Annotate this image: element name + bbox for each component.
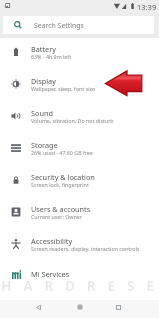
button[interactable]: Sound	[0, 100, 159, 132]
button[interactable]: Security & location	[0, 164, 159, 196]
button[interactable]: Accessibility	[0, 228, 159, 260]
staticText: Screen readers, display, interaction con…	[31, 245, 140, 252]
button[interactable]: Mi Services	[0, 258, 159, 290]
staticText: 26% used - 47.60 GB free	[31, 149, 93, 156]
staticText: Accessibility	[31, 236, 73, 246]
staticText: Search Settings	[34, 21, 84, 30]
staticText: Screen lock, fingerprint	[31, 181, 89, 188]
staticText: HARDRESET	[1, 276, 159, 295]
button[interactable]: Storage	[0, 132, 159, 164]
button[interactable]: Recents	[109, 298, 128, 317]
staticText: 13:39	[137, 2, 157, 12]
button[interactable]: Home	[70, 297, 89, 316]
button[interactable]: Back	[29, 298, 48, 317]
button[interactable]: Battery	[0, 36, 159, 68]
button[interactable]: Users & accounts	[0, 196, 159, 228]
staticText: Security & location	[31, 172, 95, 182]
button[interactable]: Display	[0, 68, 159, 100]
staticText: Users & accounts	[31, 204, 91, 214]
staticText: 63% - 4h 9m left	[31, 53, 72, 60]
staticText: Display	[31, 76, 56, 86]
staticText: Storage	[31, 140, 58, 150]
staticText: Sound	[31, 108, 53, 118]
staticText: Mi Services	[31, 269, 70, 279]
staticText: Wallpaper, sleep, font size	[31, 85, 96, 92]
staticText: Battery	[31, 44, 56, 54]
button[interactable]: Search Settings	[3, 16, 154, 34]
staticText: Current user: Owner	[31, 213, 82, 220]
staticText: Volume, vibration, Do not disturb	[31, 117, 114, 124]
